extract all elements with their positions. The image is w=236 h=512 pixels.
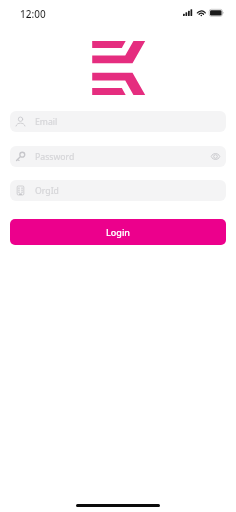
button[interactable]: Login xyxy=(10,219,226,245)
staticText: Password xyxy=(35,151,75,163)
staticText: Login xyxy=(106,226,130,238)
staticText: OrgId xyxy=(35,185,59,197)
staticText: 12:00 xyxy=(20,7,46,21)
button[interactable]: OrgId xyxy=(10,180,226,201)
staticText: Email xyxy=(35,116,58,128)
button[interactable]: Show password xyxy=(205,146,226,167)
button[interactable]: Email xyxy=(10,111,226,132)
button[interactable]: Password xyxy=(10,146,226,167)
